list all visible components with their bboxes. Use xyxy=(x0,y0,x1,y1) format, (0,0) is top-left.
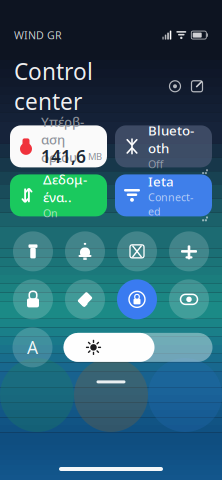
staticText: On xyxy=(43,206,58,220)
button[interactable]: Edit xyxy=(186,75,208,97)
button[interactable]: Υπέρβαση ορίου.. xyxy=(10,125,107,167)
staticText: WIND GR xyxy=(14,28,62,42)
button[interactable]: Eye comfort xyxy=(166,276,212,322)
button[interactable]: Lock xyxy=(10,276,56,322)
button[interactable]: Brightness xyxy=(63,333,212,362)
staticText: Ieta xyxy=(148,172,174,190)
button[interactable]: Ieta xyxy=(115,174,212,216)
staticText: MB xyxy=(88,150,102,163)
staticText: Υπέρβαση ορίου.. xyxy=(41,113,85,166)
button[interactable]: Airplane mode xyxy=(166,228,212,274)
button[interactable]: Rotation lock xyxy=(114,276,160,322)
button[interactable]: Bluetooth xyxy=(115,125,212,167)
staticText: Bluetooth xyxy=(148,122,194,157)
staticText: Control center xyxy=(14,56,93,116)
button[interactable]: Δεδομένα.. xyxy=(10,174,107,216)
staticText: Connected xyxy=(148,190,193,218)
staticText: 141,6 xyxy=(41,145,86,168)
staticText: Off xyxy=(148,157,163,171)
staticText: A xyxy=(27,336,38,359)
button[interactable]: Ringer xyxy=(62,228,108,274)
button[interactable]: Location xyxy=(62,276,108,322)
button[interactable]: Screenshot xyxy=(114,228,160,274)
button[interactable]: Flashlight xyxy=(10,228,56,274)
staticText: Δεδομένα.. xyxy=(43,171,87,206)
button[interactable]: Settings xyxy=(164,75,186,97)
button[interactable]: Auto brightness xyxy=(9,324,55,370)
